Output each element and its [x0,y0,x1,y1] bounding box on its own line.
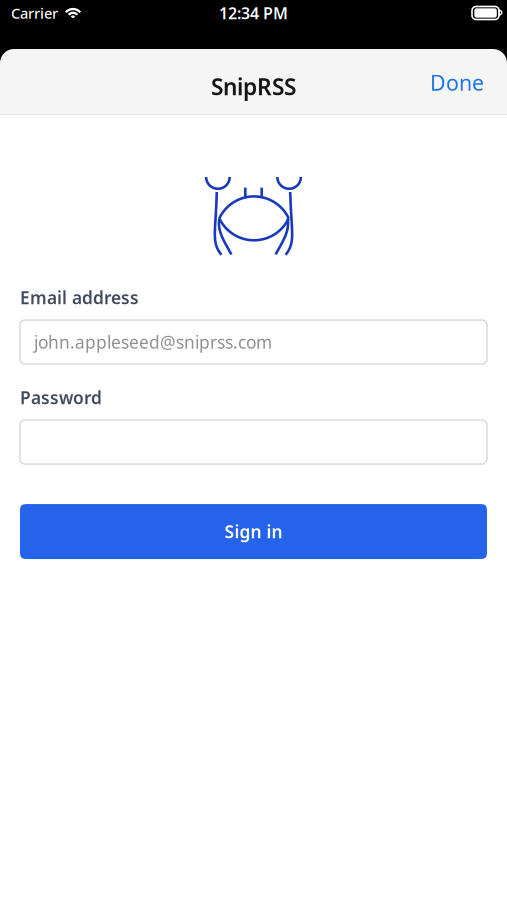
staticText: john.appleseed@sniprss.com [34,330,272,353]
staticText: Email address [20,286,139,309]
button[interactable]: Done [430,68,484,96]
button[interactable]: Sign in [20,504,487,559]
staticText: Carrier [11,3,58,23]
staticText: Password [20,386,102,409]
staticText: SnipRSS [211,71,296,101]
staticText: Sign in [224,520,282,543]
staticText: Done [430,68,484,97]
staticText: 12:34 PM [219,2,288,24]
